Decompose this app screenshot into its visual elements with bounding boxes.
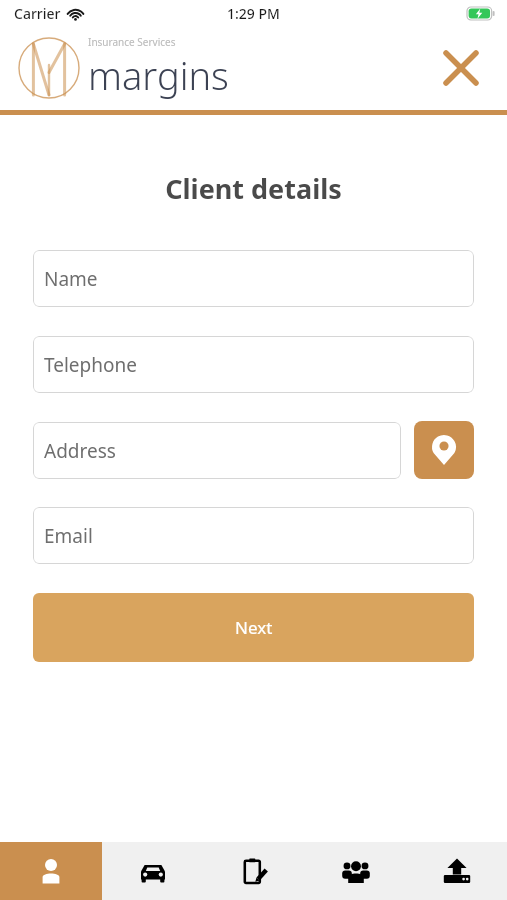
staticText: Name bbox=[44, 266, 98, 292]
staticText: Telephone bbox=[44, 352, 137, 378]
staticText: Insurance Services bbox=[88, 35, 176, 49]
staticText: Client details bbox=[0, 170, 507, 207]
button[interactable]: Find address on map bbox=[414, 421, 474, 479]
staticText: Email bbox=[44, 523, 93, 549]
button[interactable]: Name bbox=[33, 250, 474, 307]
button[interactable]: Next bbox=[33, 593, 474, 662]
staticText: 1:29 PM bbox=[227, 4, 280, 23]
button[interactable]: People bbox=[305, 842, 406, 900]
button[interactable]: Upload bbox=[406, 842, 507, 900]
staticText: margins bbox=[88, 49, 229, 101]
button[interactable]: Close bbox=[437, 44, 485, 92]
button[interactable]: Address bbox=[33, 422, 401, 479]
staticText: Address bbox=[44, 438, 116, 464]
button[interactable]: Telephone bbox=[33, 336, 474, 393]
button[interactable]: Email bbox=[33, 507, 474, 564]
button[interactable]: Claim form bbox=[204, 842, 305, 900]
staticText: Carrier bbox=[14, 4, 61, 23]
button[interactable]: Vehicle bbox=[102, 842, 204, 900]
button[interactable]: Client bbox=[0, 842, 102, 900]
staticText: Next bbox=[235, 616, 273, 639]
